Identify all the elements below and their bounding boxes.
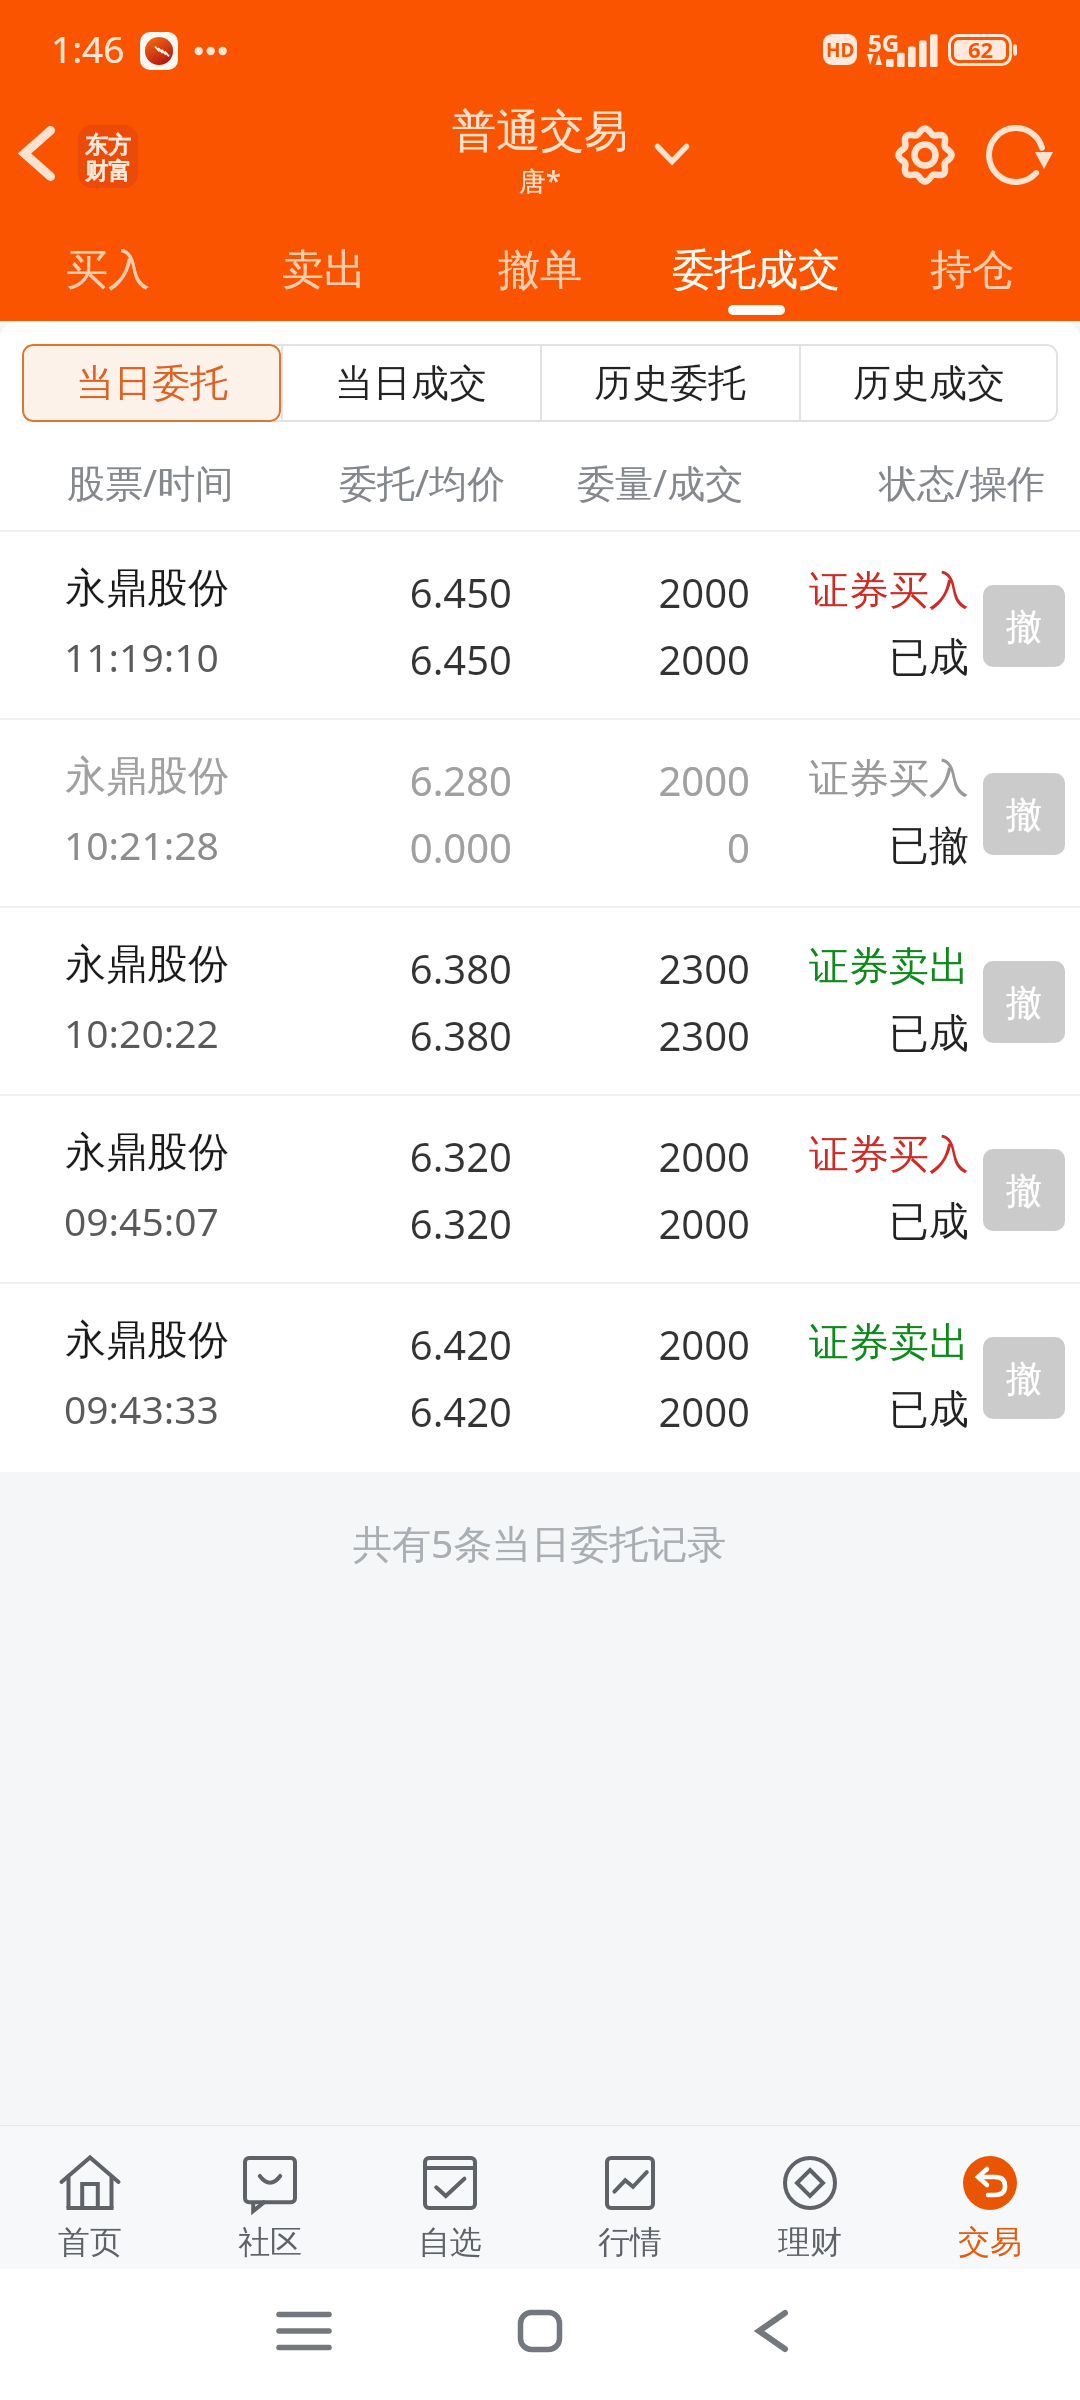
staticText: 已成	[760, 1196, 969, 1246]
staticText: 6.280	[272, 753, 512, 807]
staticText: 委托成交	[672, 244, 840, 297]
staticText: 0	[560, 820, 750, 874]
button[interactable]: 撤单	[432, 220, 648, 321]
staticText: 当日成交	[335, 359, 487, 407]
staticText: 6.420	[272, 1384, 512, 1438]
staticText: 09:45:07	[64, 1194, 219, 1247]
staticText: 09:43:33	[64, 1382, 219, 1435]
staticText: 证券买入	[760, 753, 969, 803]
staticText: 证券买入	[760, 1129, 969, 1179]
staticText: 历史委托	[594, 359, 746, 407]
staticText: 买入	[66, 244, 150, 297]
staticText: 2000	[560, 1196, 750, 1250]
staticText: 2000	[560, 1384, 750, 1438]
button[interactable]: 撤	[983, 773, 1065, 855]
staticText: 撤	[1006, 1168, 1042, 1213]
staticText: 撤	[1006, 1356, 1042, 1401]
staticText: 6.320	[272, 1196, 512, 1250]
button[interactable]: 当日委托	[22, 344, 281, 422]
staticText: 6.450	[272, 632, 512, 686]
button[interactable]: 永鼎股份	[0, 1096, 1080, 1284]
staticText: 证券卖出	[760, 1317, 969, 1367]
staticText: 2000	[560, 565, 750, 619]
button[interactable]: Home	[495, 2286, 585, 2376]
staticText: 62	[968, 34, 994, 64]
staticText: 东方	[85, 131, 131, 157]
staticText: 2000	[560, 632, 750, 686]
button[interactable]: 历史委托	[540, 344, 799, 422]
staticText: 2300	[560, 941, 750, 995]
button[interactable]: Settings	[881, 111, 969, 199]
staticText: 理财	[778, 2222, 842, 2262]
button[interactable]: 卖出	[216, 220, 432, 321]
button[interactable]: 自选	[360, 2125, 540, 2269]
button[interactable]: 撤	[983, 961, 1065, 1043]
staticText: 证券买入	[760, 565, 969, 615]
button[interactable]: 买入	[0, 220, 216, 321]
staticText: 6.380	[272, 1008, 512, 1062]
staticText: 2000	[560, 1317, 750, 1371]
staticText: 已成	[760, 632, 969, 682]
staticText: 历史成交	[853, 359, 1005, 407]
button[interactable]: 历史成交	[799, 344, 1058, 422]
staticText: 唐*	[519, 162, 561, 194]
button[interactable]: 永鼎股份	[0, 720, 1080, 908]
staticText: 自选	[418, 2222, 482, 2262]
staticText: 交易	[958, 2222, 1022, 2262]
staticText: 已撤	[760, 820, 969, 870]
staticText: 6.320	[272, 1129, 512, 1183]
button[interactable]: Refresh	[971, 111, 1059, 199]
button[interactable]: 行情	[540, 2125, 720, 2269]
staticText: 6.420	[272, 1317, 512, 1371]
button[interactable]	[22, 344, 281, 422]
staticText: 2300	[560, 1008, 750, 1062]
staticText: 已成	[760, 1008, 969, 1058]
button[interactable]: 撤	[983, 1149, 1065, 1231]
button[interactable]: Back	[727, 2286, 817, 2376]
staticText: 已成	[760, 1384, 969, 1434]
staticText: 当日委托	[76, 359, 228, 407]
staticText: 撤	[1006, 980, 1042, 1025]
staticText: 撤	[1006, 792, 1042, 837]
button[interactable]: Recents	[259, 2286, 349, 2376]
staticText: 委托/均价	[339, 456, 506, 508]
staticText: 共有5条当日委托记录	[353, 1516, 727, 1569]
button[interactable]: 永鼎股份	[0, 908, 1080, 1096]
staticText: 股票/时间	[67, 456, 234, 508]
staticText: 11:19:10	[64, 630, 219, 683]
staticText: 永鼎股份	[65, 1315, 229, 1367]
staticText: 0.000	[272, 820, 512, 874]
staticText: 状态/操作	[879, 456, 1046, 508]
button[interactable]: 撤	[983, 1337, 1065, 1419]
staticText: 6.450	[272, 565, 512, 619]
staticText: 2000	[560, 753, 750, 807]
staticText: 永鼎股份	[65, 751, 229, 803]
button[interactable]: 理财	[720, 2125, 900, 2269]
staticText: 永鼎股份	[65, 939, 229, 991]
button[interactable]: 首页	[0, 2125, 180, 2269]
staticText: 持仓	[930, 244, 1014, 297]
staticText: 卖出	[282, 244, 366, 297]
staticText: HD	[826, 37, 855, 63]
button[interactable]: 委托成交	[648, 220, 864, 321]
staticText: 5G	[868, 26, 900, 59]
staticText: 永鼎股份	[65, 1127, 229, 1179]
button[interactable]: 永鼎股份	[0, 532, 1080, 720]
button[interactable]: 永鼎股份	[0, 1284, 1080, 1472]
staticText: 永鼎股份	[65, 563, 229, 615]
staticText: 撤单	[498, 244, 582, 297]
staticText: 财富	[85, 157, 131, 183]
staticText: 6.380	[272, 941, 512, 995]
button[interactable]: 撤	[983, 585, 1065, 667]
staticText: 首页	[58, 2222, 122, 2262]
staticText: 撤	[1006, 604, 1042, 649]
button[interactable]: 当日成交	[281, 344, 540, 422]
button[interactable]: 交易	[900, 2125, 1080, 2269]
staticText: 委量/成交	[577, 456, 744, 508]
button[interactable]: 持仓	[864, 220, 1080, 321]
staticText: 1:46	[51, 23, 125, 73]
button[interactable]: 社区	[180, 2125, 360, 2269]
staticText: 10:21:28	[64, 818, 219, 871]
staticText: 社区	[238, 2222, 302, 2262]
button[interactable]: Back	[0, 100, 78, 220]
